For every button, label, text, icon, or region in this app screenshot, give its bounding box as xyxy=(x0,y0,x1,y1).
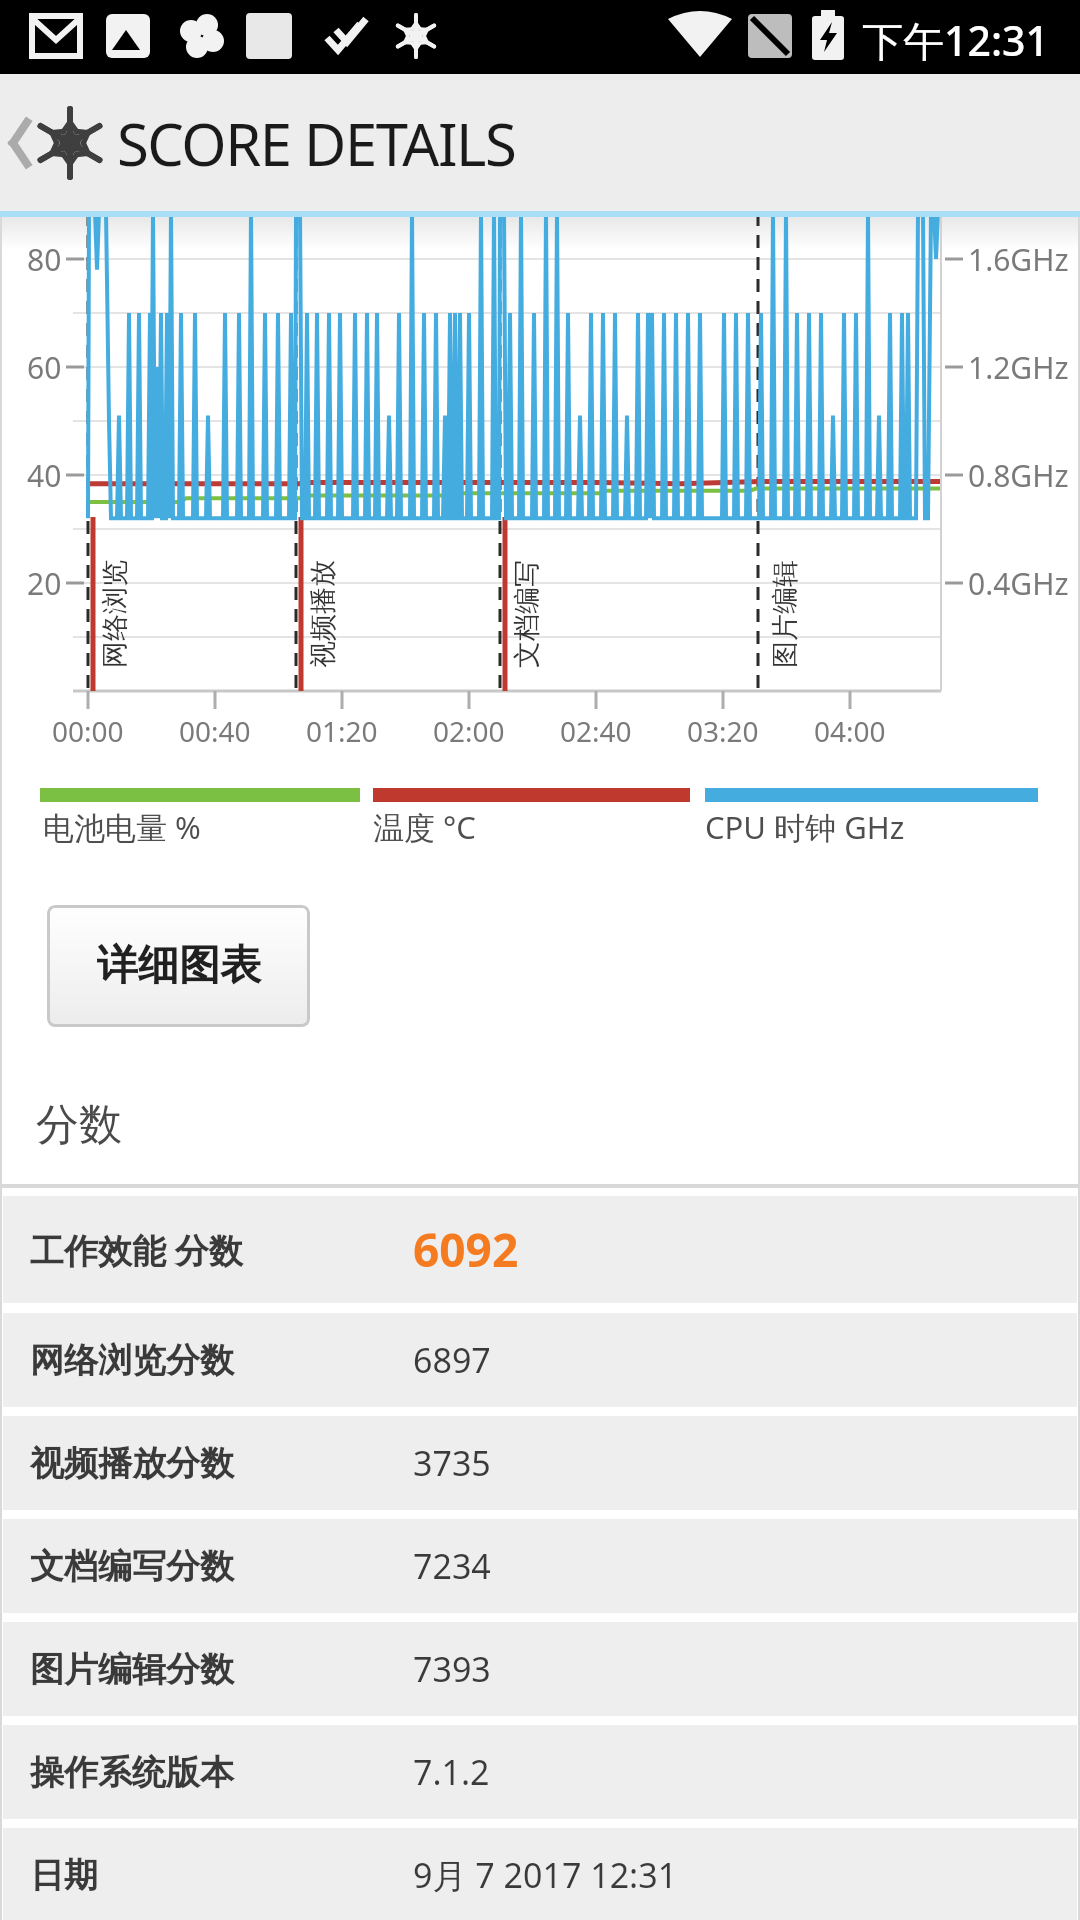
staticText: 分数 xyxy=(36,1098,122,1152)
staticText: 日期 xyxy=(30,1854,98,1897)
button[interactable]: 图片编辑分数 xyxy=(3,1622,1077,1716)
staticText: 9月 7 2017 12:31 xyxy=(413,1852,678,1898)
staticText: 7393 xyxy=(413,1646,491,1692)
staticText: SCORE DETAILS xyxy=(117,104,516,183)
button[interactable]: 网络浏览分数 xyxy=(3,1313,1077,1407)
button[interactable]: 详细图表 xyxy=(47,905,310,1027)
button[interactable]: 视频播放分数 xyxy=(3,1416,1077,1510)
staticText: 7.1.2 xyxy=(413,1749,490,1795)
staticText: 6897 xyxy=(413,1337,491,1383)
button[interactable]: 操作系统版本 xyxy=(3,1725,1077,1819)
staticText: 下午12:31 xyxy=(862,12,1049,68)
button[interactable]: 工作效能 分数 xyxy=(3,1196,1077,1303)
staticText: 网络浏览分数 xyxy=(30,1339,234,1382)
staticText: 6092 xyxy=(413,1218,519,1281)
staticText: 视频播放分数 xyxy=(30,1442,234,1485)
staticText: 操作系统版本 xyxy=(30,1751,234,1794)
staticText: 文档编写分数 xyxy=(30,1545,234,1588)
staticText: 工作效能 分数 xyxy=(30,1227,243,1273)
staticText: 3735 xyxy=(413,1440,491,1486)
staticText: 7234 xyxy=(413,1543,491,1589)
staticText: 详细图表 xyxy=(97,940,261,992)
staticText: 图片编辑分数 xyxy=(30,1648,234,1691)
button[interactable]: 日期 xyxy=(3,1828,1077,1920)
button[interactable]: 文档编写分数 xyxy=(3,1519,1077,1613)
